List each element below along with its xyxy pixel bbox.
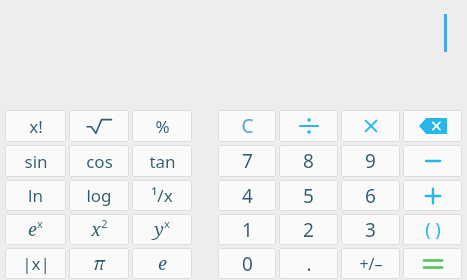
staticText: e	[158, 251, 167, 276]
staticText: tan	[149, 150, 176, 173]
staticText: 9	[365, 148, 376, 174]
staticText: 6	[365, 183, 376, 209]
staticText: x	[91, 217, 101, 242]
staticText: +/–	[359, 253, 383, 275]
button[interactable]: +/–	[341, 248, 400, 279]
button[interactable]: sin	[5, 145, 66, 177]
staticText: .	[306, 251, 312, 277]
staticText: 0	[242, 251, 253, 277]
button[interactable]: plus	[403, 180, 462, 211]
staticText: 4	[242, 183, 253, 209]
button[interactable]: ( )	[403, 214, 462, 245]
button[interactable]: 5	[279, 180, 338, 211]
button[interactable]: x squared	[69, 214, 129, 245]
staticText: C	[241, 113, 254, 139]
staticText: 1	[242, 217, 253, 243]
staticText: cos	[86, 150, 113, 173]
button[interactable]: y to the x	[132, 214, 192, 245]
staticText: ln	[28, 184, 43, 207]
staticText: 3	[365, 217, 376, 243]
button[interactable]: 1	[218, 214, 276, 245]
button[interactable]: ln	[5, 180, 66, 211]
button[interactable]: 4	[218, 180, 276, 211]
staticText: %	[155, 115, 170, 138]
button[interactable]: 3	[341, 214, 400, 245]
button[interactable]: multiply	[341, 110, 400, 142]
button[interactable]: cos	[69, 145, 129, 177]
button[interactable]: x!	[5, 110, 66, 142]
button[interactable]: .	[279, 248, 338, 279]
staticText: |x|	[22, 252, 50, 275]
button[interactable]: 0	[218, 248, 276, 279]
staticText: 5	[303, 183, 314, 209]
button[interactable]: %	[132, 110, 192, 142]
button[interactable]: equals	[403, 248, 462, 279]
staticText: ( )	[425, 217, 441, 242]
staticText: 2	[101, 216, 108, 231]
button[interactable]: ¹/x	[132, 180, 192, 211]
button[interactable]: e	[132, 248, 192, 279]
button[interactable]: square root	[69, 110, 129, 142]
button[interactable]: backspace	[403, 110, 462, 142]
button[interactable]: 8	[279, 145, 338, 177]
staticText: y	[154, 217, 164, 242]
staticText: π	[93, 251, 105, 276]
button[interactable]: 7	[218, 145, 276, 177]
button[interactable]: C	[218, 110, 276, 142]
staticText: sin	[24, 150, 48, 173]
button[interactable]: 9	[341, 145, 400, 177]
button[interactable]: log	[69, 180, 129, 211]
button[interactable]: π	[69, 248, 129, 279]
staticText: 2	[303, 217, 314, 243]
button[interactable]: |x|	[5, 248, 66, 279]
button[interactable]: tan	[132, 145, 192, 177]
staticText: x	[164, 216, 170, 231]
button[interactable]: divide	[279, 110, 338, 142]
staticText: ¹/x	[151, 184, 173, 207]
staticText: x	[37, 216, 43, 231]
button[interactable]: 6	[341, 180, 400, 211]
staticText: 8	[303, 148, 314, 174]
staticText: 7	[242, 148, 253, 174]
staticText: x!	[29, 115, 43, 138]
button[interactable]: 2	[279, 214, 338, 245]
button[interactable]: minus	[403, 145, 462, 177]
button[interactable]: e to the x	[5, 214, 66, 245]
staticText: log	[86, 184, 112, 207]
staticText: e	[28, 217, 37, 242]
